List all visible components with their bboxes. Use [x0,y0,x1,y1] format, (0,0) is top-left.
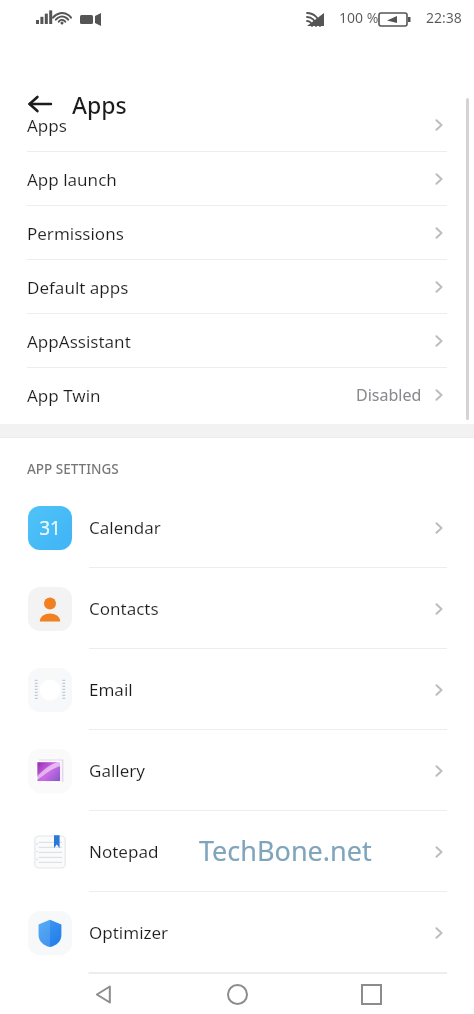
button[interactable]: Email [0,649,474,730]
staticText: TechBone.net [199,832,372,869]
staticText: App Twin [27,384,101,407]
button[interactable]: Apps [0,98,474,152]
staticText: Permissions [27,222,124,245]
button[interactable]: Recents [341,974,401,1014]
button[interactable]: App Twin [0,368,474,422]
button[interactable]: Gallery [0,730,474,811]
staticText: Apps [72,89,127,120]
staticText: Email [89,678,133,701]
staticText: App launch [27,168,117,191]
button[interactable]: Back [74,974,134,1014]
staticText: Gallery [89,759,145,782]
staticText: 100 % [339,8,379,27]
staticText: APP SETTINGS [27,460,119,478]
staticText: Default apps [27,276,129,299]
button[interactable]: Permissions [0,206,474,260]
staticText: Calendar [89,516,161,539]
staticText: AppAssistant [27,330,131,353]
staticText: Disabled [356,384,422,406]
button[interactable]: Contacts [0,568,474,649]
button[interactable]: Default apps [0,260,474,314]
staticText: Notepad [89,840,159,863]
button[interactable]: Notepad [0,811,474,892]
staticText: 31 [39,515,61,541]
button[interactable]: Home [207,974,267,1014]
button[interactable]: AppAssistant [0,314,474,368]
button[interactable]: Optimizer [0,892,474,973]
button[interactable]: 31 [0,487,474,568]
staticText: Apps [27,114,67,137]
staticText: Optimizer [89,921,169,944]
button[interactable]: App launch [0,152,474,206]
staticText: 22:38 [426,8,462,27]
button[interactable]: Back [18,82,62,126]
staticText: Contacts [89,597,159,620]
